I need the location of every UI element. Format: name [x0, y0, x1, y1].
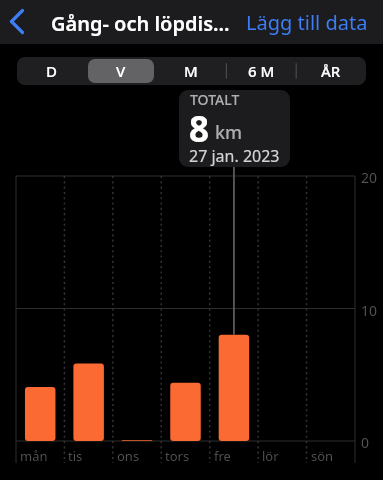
staticText: Lägg till data — [246, 9, 368, 36]
button[interactable]: M — [156, 57, 226, 85]
staticText: M — [184, 61, 198, 81]
staticText: TOTALT — [190, 90, 240, 109]
staticText: D — [46, 61, 57, 81]
staticText: 8 — [189, 105, 210, 153]
button[interactable]: V — [86, 57, 156, 85]
staticText: tis — [68, 447, 83, 465]
staticText: ons — [117, 447, 140, 465]
button[interactable]: TOTALT — [179, 90, 290, 167]
button[interactable]: Lägg till data — [246, 0, 383, 44]
staticText: mån — [20, 447, 48, 465]
button[interactable]: 6 M — [226, 57, 296, 85]
staticText: fre — [214, 447, 231, 465]
staticText: ÅR — [321, 61, 341, 81]
staticText: 0 — [361, 433, 370, 452]
staticText: sön — [311, 447, 334, 465]
staticText: 6 M — [248, 61, 275, 81]
staticText: 27 jan. 2023 — [189, 145, 280, 167]
staticText: lör — [262, 447, 279, 465]
button[interactable]: ÅR — [296, 57, 366, 85]
staticText: V — [116, 61, 126, 81]
staticText: Gång- och löpdis... — [51, 10, 230, 37]
staticText: tors — [165, 447, 190, 465]
staticText: 10 — [361, 301, 378, 320]
button[interactable]: Back — [0, 0, 42, 44]
staticText: 20 — [361, 168, 378, 187]
button[interactable]: D — [17, 57, 86, 85]
staticText: km — [215, 120, 243, 145]
